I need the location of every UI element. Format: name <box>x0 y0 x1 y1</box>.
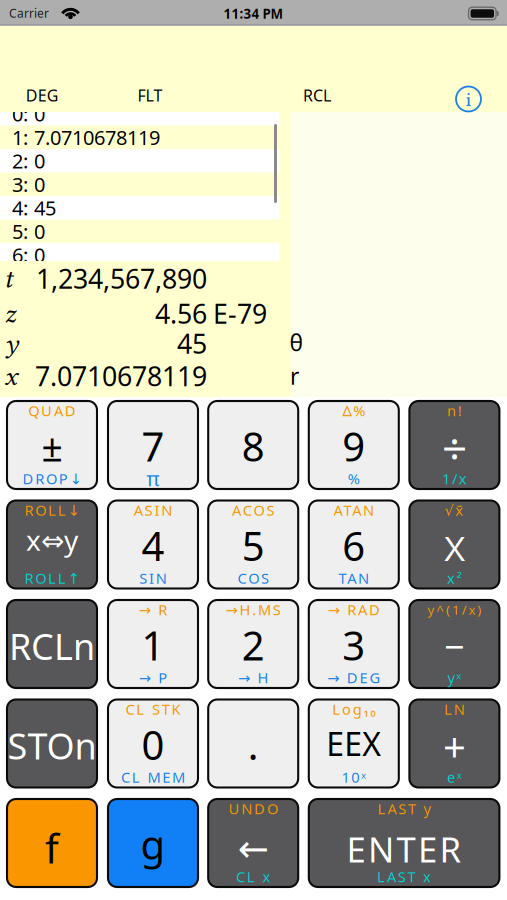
staticText: i <box>465 87 471 111</box>
button[interactable]: QUAD <box>7 401 97 489</box>
staticText: → RAD <box>328 600 380 619</box>
staticText: FLT <box>137 85 162 106</box>
button[interactable]: Log₁₀ <box>309 699 399 787</box>
staticText: 4.56 <box>155 296 207 331</box>
staticText: CL STK <box>125 699 180 719</box>
staticText: DROP↓ <box>22 469 82 488</box>
staticText: ENTER <box>347 826 462 872</box>
staticText: 10ˣ <box>341 767 366 787</box>
button[interactable]: ATAN <box>309 500 399 588</box>
staticText: yˣ <box>447 668 461 687</box>
staticText: t <box>4 262 13 294</box>
staticText: 0 <box>34 241 45 268</box>
button[interactable]: g <box>108 799 198 887</box>
button[interactable]: 8 <box>208 401 298 489</box>
staticText: 6: <box>12 241 28 268</box>
staticText: ASIN <box>134 500 172 520</box>
button[interactable]: Info <box>453 84 483 114</box>
button[interactable]: → RAD <box>309 600 399 688</box>
staticText: →H.MS <box>226 600 281 619</box>
staticText: 45 <box>34 194 56 221</box>
button[interactable]: 7 <box>108 401 198 489</box>
staticText: ACOS <box>232 500 274 520</box>
button[interactable]: Backspace <box>208 799 298 887</box>
button[interactable]: STOn <box>7 699 97 787</box>
staticText: Δ% <box>342 401 365 420</box>
button[interactable]: RCLn <box>7 600 97 688</box>
button[interactable]: ROLL↓ <box>7 500 97 588</box>
staticText: n! <box>447 401 462 420</box>
staticText: 1,234,567,890 <box>36 261 207 296</box>
button[interactable]: LN <box>409 699 499 787</box>
staticText: eˣ <box>447 767 462 787</box>
staticText: 4: <box>12 194 28 221</box>
button[interactable]: CL STK <box>108 699 198 787</box>
button[interactable]: . <box>208 699 298 787</box>
staticText: 0: <box>12 100 28 127</box>
staticText: 1/x <box>442 469 467 488</box>
staticText: CL x <box>236 867 270 886</box>
staticText: √x̄ <box>444 500 464 520</box>
staticText: 1: <box>12 124 28 151</box>
staticText: ÷ <box>442 418 467 477</box>
staticText: f <box>45 821 59 874</box>
staticText: DEG <box>26 85 59 106</box>
button[interactable]: LAST y <box>309 799 499 887</box>
button[interactable]: n! <box>409 401 499 489</box>
staticText: → DEG <box>327 668 380 687</box>
staticText: LN <box>444 699 465 719</box>
button[interactable]: ACOS <box>208 500 298 588</box>
staticText: 0 <box>34 218 45 245</box>
button[interactable]: f <box>7 799 97 887</box>
staticText: 7.0710678119 <box>34 124 160 151</box>
staticText: STOn <box>7 722 96 769</box>
staticText: CL MEM <box>121 767 185 787</box>
button[interactable]: y^(1/x) <box>409 600 499 688</box>
staticText: x <box>4 360 17 392</box>
staticText: y^(1/x) <box>427 601 481 618</box>
staticText: → R <box>139 600 167 619</box>
button[interactable]: →H.MS <box>208 600 298 688</box>
staticText: 0 <box>34 147 45 174</box>
staticText: y <box>4 327 18 359</box>
staticText: x⇔y <box>26 521 78 559</box>
staticText: − <box>444 622 465 670</box>
staticText: E-79 <box>213 296 267 331</box>
staticText: 6 <box>342 519 365 572</box>
staticText: x <box>443 518 466 572</box>
staticText: LAST x <box>377 867 431 886</box>
staticText: x² <box>447 568 462 588</box>
staticText: RCLn <box>9 622 95 670</box>
staticText: ± <box>41 422 62 472</box>
staticText: + <box>443 719 466 772</box>
staticText: ROLL↑ <box>24 568 80 588</box>
staticText: TAN <box>338 568 369 588</box>
staticText: Carrier <box>9 5 49 21</box>
staticText: r <box>290 361 299 391</box>
button[interactable]: ASIN <box>108 500 198 588</box>
staticText: 2: <box>12 147 28 174</box>
staticText: ATAN <box>334 500 374 520</box>
staticText: 11:34 PM <box>223 5 283 22</box>
staticText: → H <box>238 668 268 687</box>
staticText: % <box>348 469 360 488</box>
staticText: ← <box>238 827 269 870</box>
staticText: COS <box>237 568 269 588</box>
staticText: 1 <box>141 618 164 671</box>
staticText: . <box>248 718 259 771</box>
staticText: EEX <box>326 722 381 765</box>
button[interactable]: → R <box>108 600 198 688</box>
staticText: 4 <box>141 519 164 572</box>
staticText: z <box>4 297 16 329</box>
staticText: QUAD <box>28 401 76 420</box>
staticText: → P <box>139 668 167 687</box>
staticText: 7 <box>141 419 164 472</box>
staticText: g <box>140 817 165 870</box>
staticText: 45 <box>177 326 207 361</box>
staticText: UNDO <box>228 799 278 818</box>
staticText: RCL <box>303 85 331 106</box>
staticText: 5 <box>242 519 265 572</box>
button[interactable]: Δ% <box>309 401 399 489</box>
button[interactable]: √x̄ <box>409 500 499 588</box>
staticText: 2 <box>242 618 265 671</box>
